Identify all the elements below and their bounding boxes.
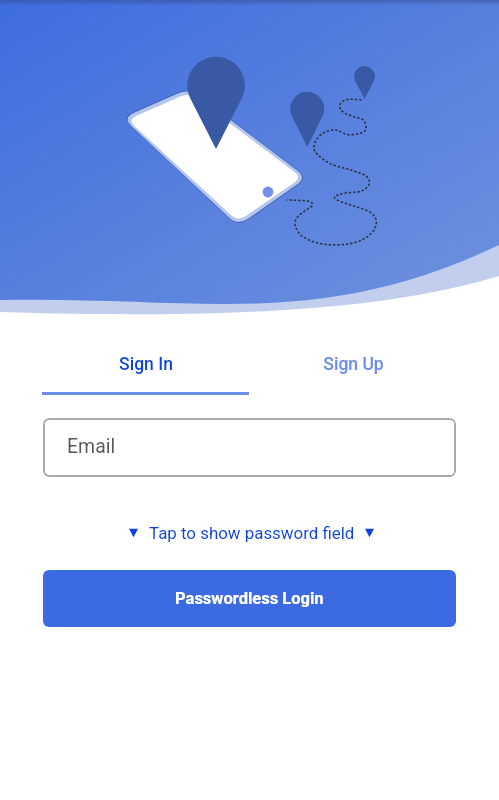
staticText: Passwordless Login xyxy=(175,589,324,608)
staticText: Sign Up xyxy=(323,354,384,375)
staticText: Email xyxy=(67,435,116,458)
button[interactable]: Passwordless Login xyxy=(43,570,456,627)
staticText: Sign In xyxy=(119,354,173,375)
button[interactable]: Sign Up xyxy=(249,354,457,395)
button[interactable]: Tap to show password field xyxy=(2,519,499,547)
button[interactable]: Email xyxy=(43,418,456,477)
button[interactable]: Sign In xyxy=(42,354,249,395)
staticText: Tap to show password field xyxy=(149,523,355,543)
